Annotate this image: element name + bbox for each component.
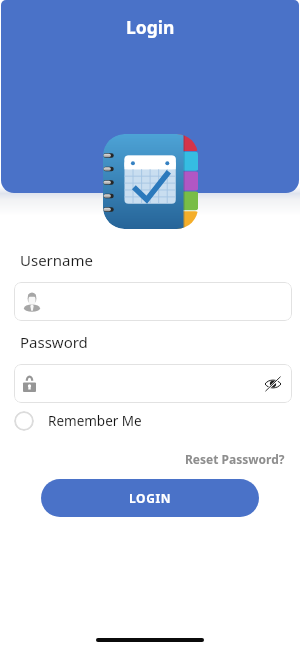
button[interactable]: Reset Password?: [183, 449, 287, 469]
button[interactable]: LOGIN: [41, 479, 259, 517]
staticText: Username: [20, 250, 93, 270]
staticText: LOGIN: [129, 490, 172, 506]
staticText: Login: [126, 15, 175, 39]
staticText: Remember Me: [48, 412, 142, 430]
button[interactable]: Show password: [261, 372, 285, 396]
button[interactable]: Remember Me: [13, 410, 143, 432]
button[interactable]: Show password: [14, 364, 292, 403]
staticText: Password: [20, 332, 88, 352]
button[interactable]: [14, 282, 292, 321]
